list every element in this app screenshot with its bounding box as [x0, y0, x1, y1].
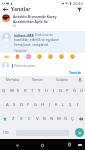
button[interactable]: O — [57, 84, 64, 98]
staticText: Tamam — [32, 78, 43, 82]
button[interactable]: Kullanıcı — [50, 76, 75, 84]
staticText: hazırlıklar, etkinlik ve eşyaların — [14, 38, 60, 42]
staticText: J — [49, 102, 51, 108]
staticText: Yanıtlar — [11, 6, 31, 13]
staticText: Ç — [71, 116, 74, 122]
staticText: V — [36, 116, 39, 122]
staticText: D — [20, 102, 24, 108]
staticText: 20:44 — [73, 1, 83, 6]
button[interactable]: Sesle yaz — [75, 76, 85, 84]
staticText: Ğ — [73, 88, 77, 94]
staticText: Ö — [64, 116, 68, 122]
staticText: . — [72, 130, 73, 135]
staticText: Anadolu'dan Aylık Ge — [13, 19, 48, 23]
button[interactable]: T — [29, 84, 36, 98]
button[interactable]: Ana ekran — [37, 140, 47, 150]
button[interactable]: Ş — [67, 98, 74, 112]
staticText: Merhaba — [6, 78, 20, 82]
button[interactable]: I — [50, 84, 57, 98]
staticText: Kullanıcı — [56, 78, 69, 82]
staticText: P — [66, 88, 69, 94]
button[interactable]: ?123 — [1, 126, 10, 139]
staticText: W — [10, 88, 14, 94]
staticText: , — [13, 130, 14, 135]
button[interactable]: U — [43, 84, 50, 98]
staticText: C — [28, 116, 31, 122]
staticText: kullanici888 — [14, 33, 34, 37]
staticText: I — [53, 88, 55, 94]
button[interactable]: C — [25, 112, 33, 126]
button[interactable]: F — [25, 98, 32, 112]
button[interactable]: Gönder — [75, 128, 84, 137]
staticText: Yanıtla — [69, 70, 81, 74]
button[interactable]: P — [64, 84, 71, 98]
button[interactable]: Tepki — [45, 53, 56, 60]
button[interactable]: Z — [9, 112, 17, 126]
button[interactable]: B — [41, 112, 48, 126]
button[interactable]: Filtrele — [75, 6, 83, 13]
button[interactable]: Tepki — [12, 53, 23, 60]
staticText: N — [50, 116, 54, 122]
staticText: R — [24, 88, 27, 94]
button[interactable]: Sil — [76, 112, 85, 126]
button[interactable]: Geri — [1, 6, 9, 13]
button[interactable]: V — [33, 112, 41, 126]
button[interactable]: H — [39, 98, 46, 112]
button[interactable]: D — [18, 98, 25, 112]
button[interactable]: I — [74, 98, 81, 112]
button[interactable]: A — [4, 98, 11, 112]
button[interactable]: N — [48, 112, 55, 126]
button[interactable]: J — [46, 98, 53, 112]
staticText: Q — [2, 88, 6, 94]
button[interactable]: Son uygulamalar — [65, 140, 74, 149]
staticText: Anadolu Ekonomide Kuzey — [13, 14, 57, 18]
button[interactable]: Tepki — [67, 53, 78, 60]
button[interactable]: Virgül — [10, 126, 16, 139]
button[interactable]: Ö — [62, 112, 69, 126]
staticText: Y — [38, 88, 41, 94]
staticText: X — [20, 116, 23, 122]
button[interactable]: Ü — [78, 84, 85, 98]
staticText: G — [34, 102, 38, 108]
button[interactable]: Q — [0, 84, 8, 98]
button[interactable]: Tepki — [34, 53, 45, 60]
button[interactable]: K — [53, 98, 60, 112]
staticText: Yanıtınızı yazın — [14, 64, 36, 68]
staticText: T — [31, 88, 34, 94]
button[interactable]: Tepki — [23, 53, 34, 60]
button[interactable]: E — [15, 84, 22, 98]
staticText: Paylaşılan — [14, 49, 28, 53]
staticText: B — [43, 116, 46, 122]
button[interactable]: Tamam — [25, 76, 50, 84]
staticText: 2s — [13, 24, 16, 28]
button[interactable]: Y — [36, 84, 43, 98]
button[interactable]: X — [17, 112, 25, 126]
staticText: Z — [12, 116, 15, 122]
staticText: S — [13, 102, 16, 108]
button[interactable]: Merhaba — [0, 76, 25, 84]
button[interactable]: Klavye gizle — [75, 140, 84, 149]
button[interactable]: M — [55, 112, 62, 126]
staticText: L — [62, 102, 65, 108]
button[interactable]: L — [60, 98, 67, 112]
button[interactable]: R — [22, 84, 29, 98]
staticText: E — [17, 88, 20, 94]
staticText: A — [6, 102, 9, 108]
button[interactable]: Yanıtla — [68, 69, 82, 75]
staticText: Ş — [69, 102, 72, 108]
button[interactable]: Ç — [69, 112, 76, 126]
button[interactable]: Tepki — [56, 53, 67, 60]
staticText: U — [45, 88, 49, 94]
button[interactable]: Ğ — [71, 84, 78, 98]
staticText: ?123 — [3, 131, 9, 135]
button[interactable]: Geri — [12, 140, 22, 150]
button[interactable]: Tepki — [1, 53, 12, 60]
button[interactable]: W — [8, 84, 15, 98]
staticText: Ü — [80, 88, 84, 94]
button[interactable]: G — [32, 98, 39, 112]
staticText: Bırakılmasını — [35, 33, 54, 37]
button[interactable]: Shift — [0, 112, 9, 126]
button[interactable]: S — [11, 98, 18, 112]
